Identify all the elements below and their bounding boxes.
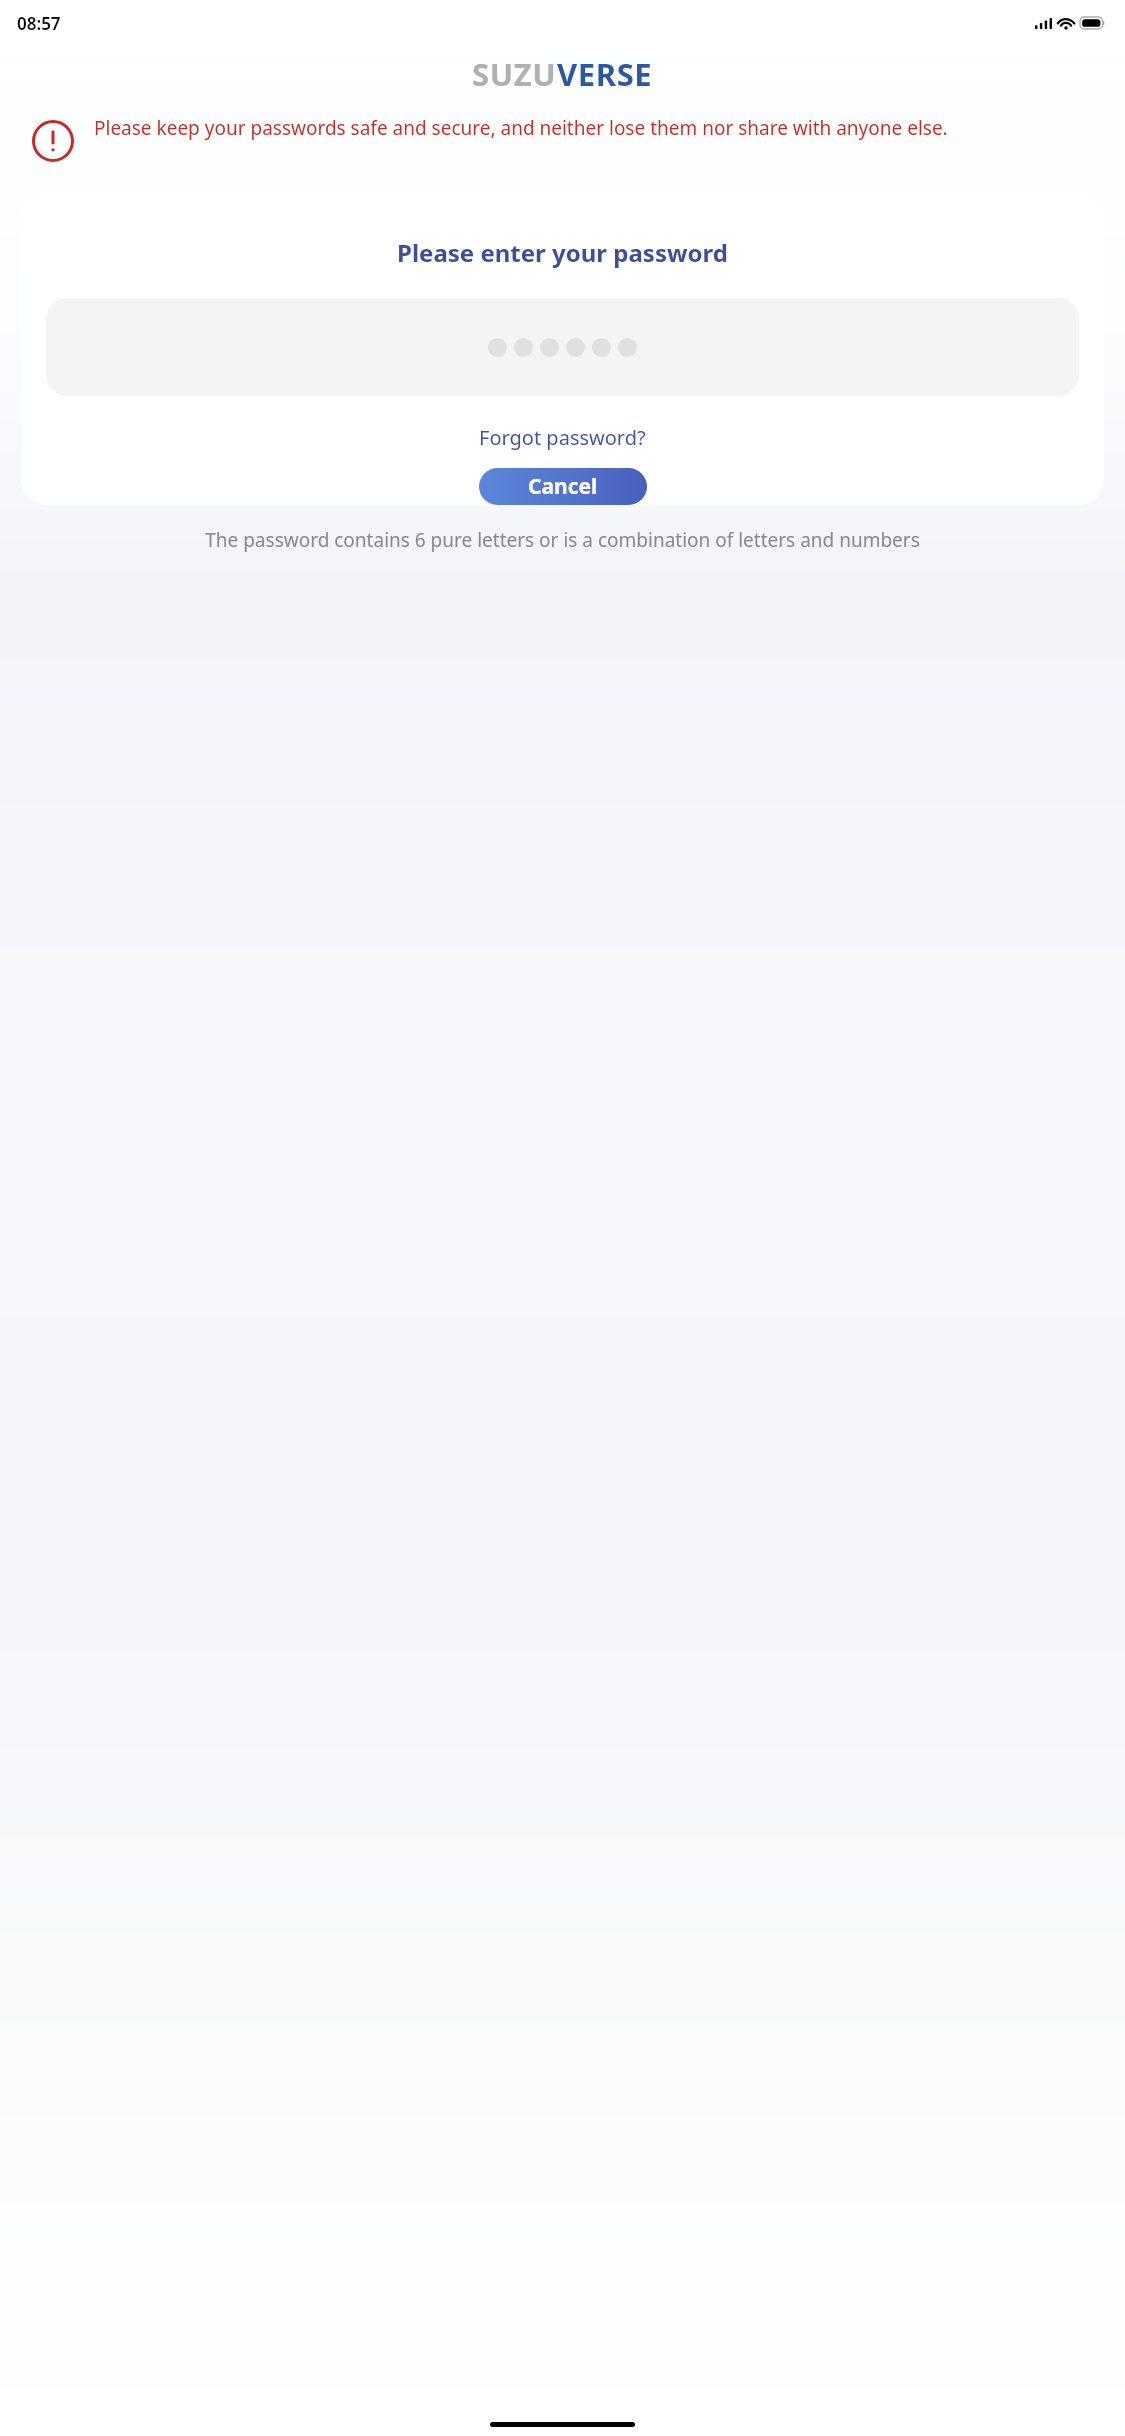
staticText: 08:57 [17,12,61,35]
staticText: Cancel [528,472,598,501]
staticText: VERSE [557,53,653,95]
button[interactable]: Cancel [479,468,647,505]
staticText: The password contains 6 pure letters or … [38,527,1087,553]
staticText: Please enter your password [397,236,728,269]
staticText: Please keep your passwords safe and secu… [94,115,948,141]
staticText: SUZU [472,53,557,95]
button[interactable]: Forgot password? [469,420,656,455]
